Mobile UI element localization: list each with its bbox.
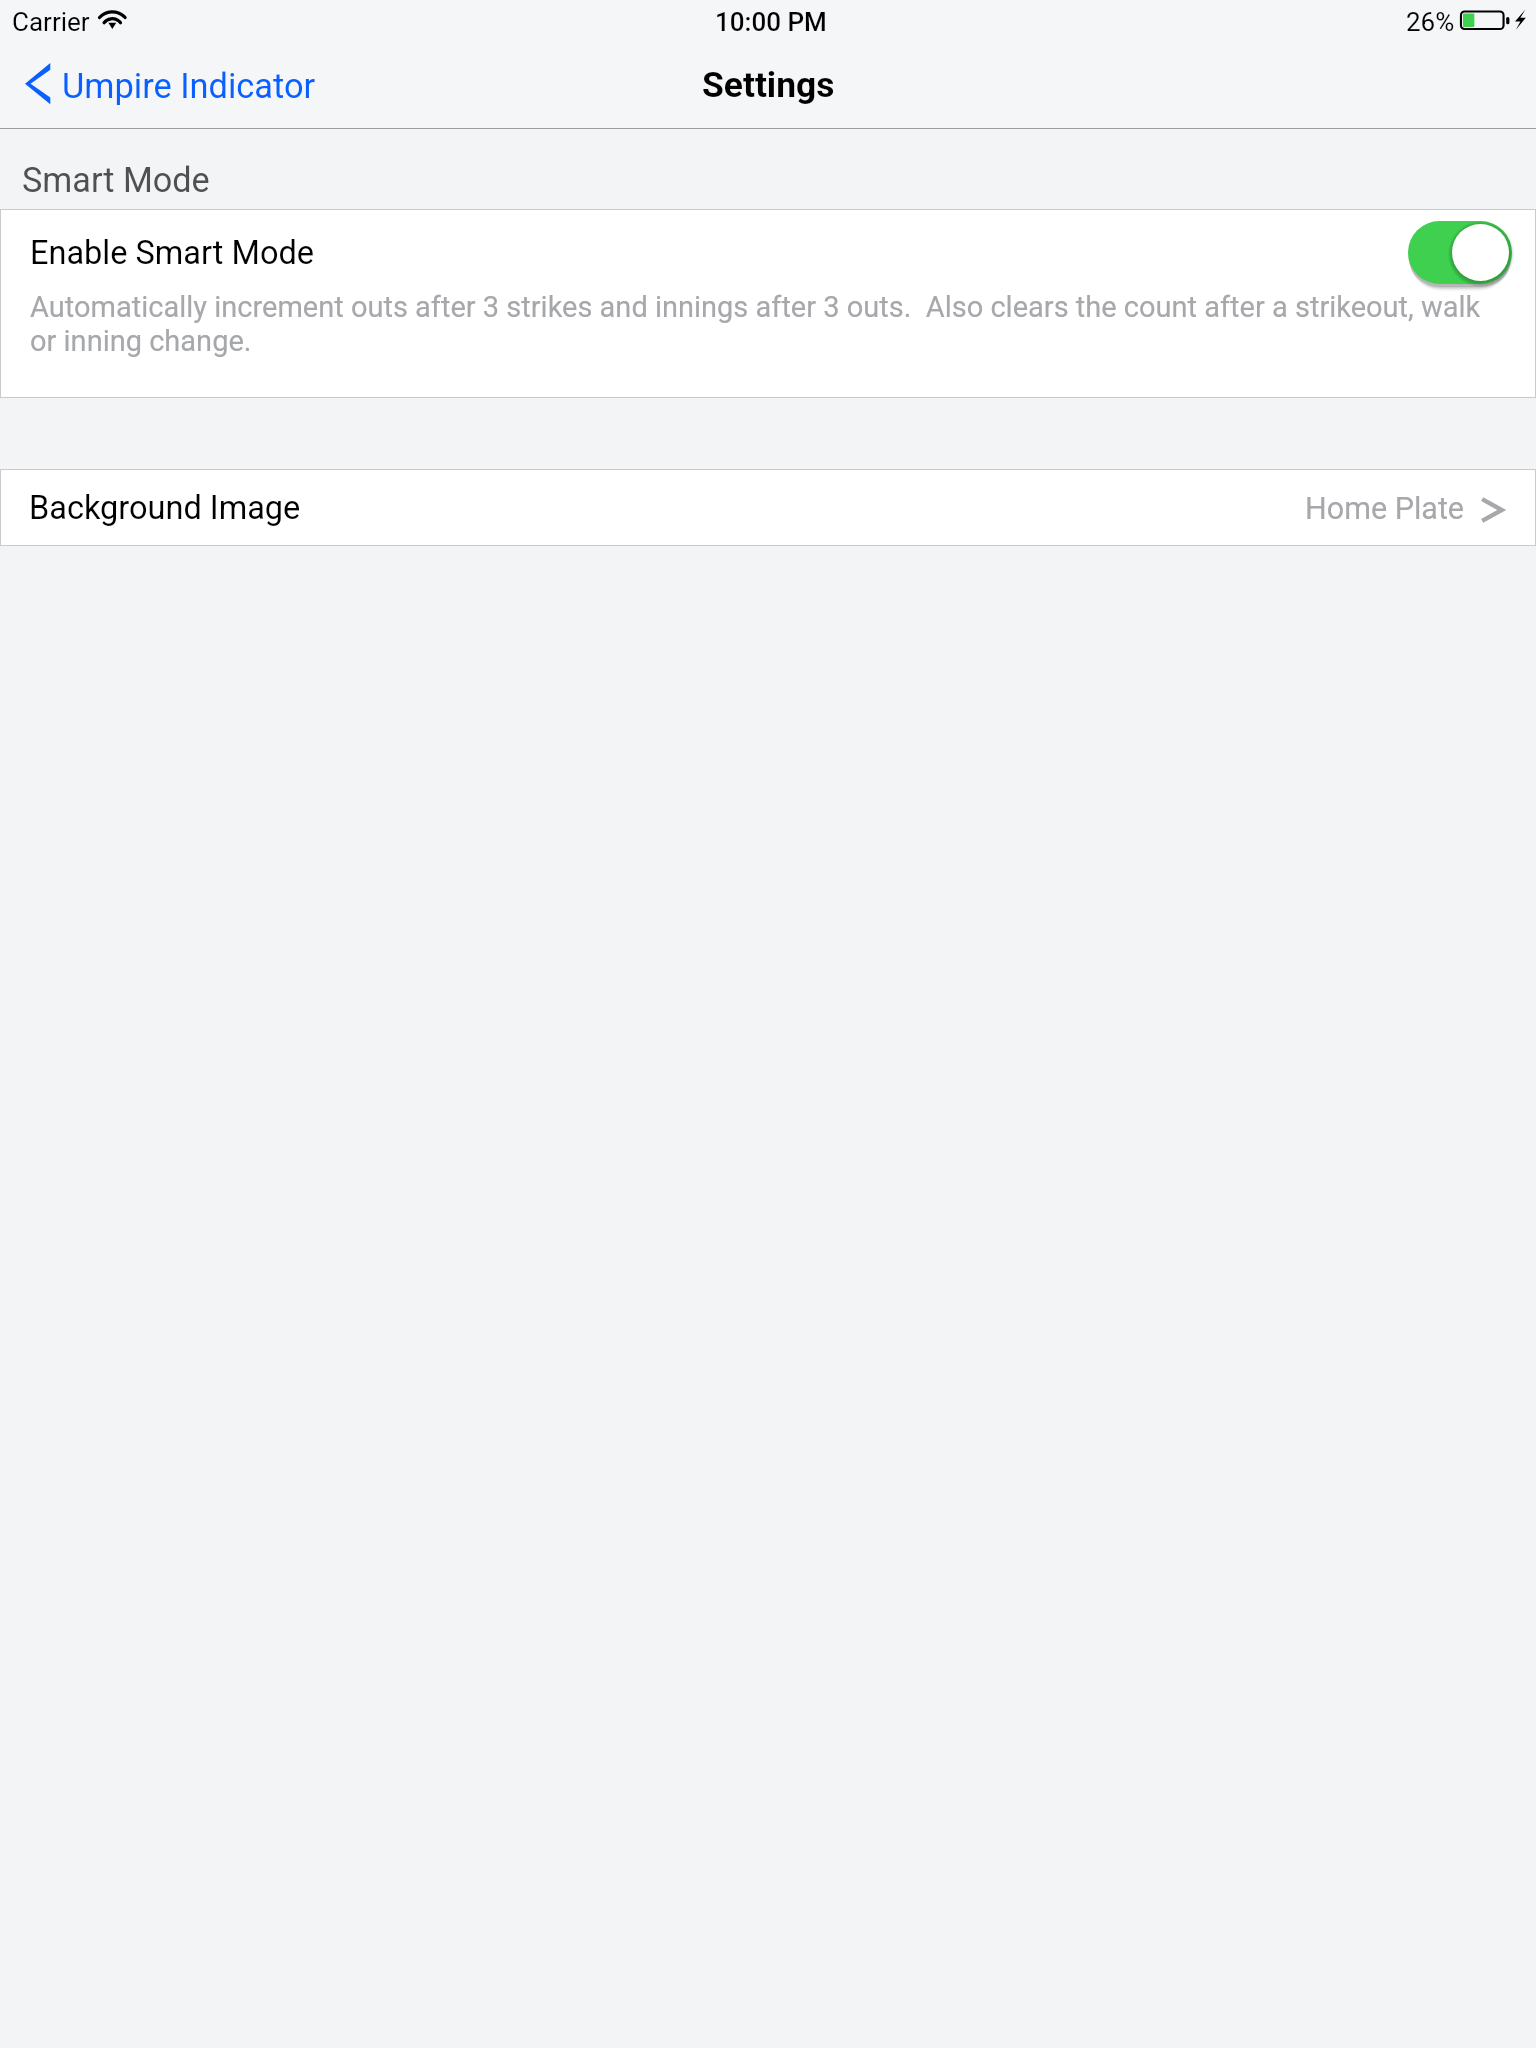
staticText: Background Image xyxy=(29,489,301,527)
button[interactable] xyxy=(1,210,1535,397)
staticText: 26% xyxy=(1406,7,1455,37)
button[interactable]: Back to Umpire Indicator xyxy=(10,48,330,118)
staticText: Umpire Indicator xyxy=(62,66,316,106)
staticText: Automatically increment outs after 3 str… xyxy=(30,290,1500,358)
button[interactable]: Background Image xyxy=(1,470,1535,545)
button[interactable]: Enable Smart Mode xyxy=(1406,221,1518,293)
staticText: Settings xyxy=(702,64,835,105)
staticText: Home Plate xyxy=(1305,491,1465,527)
staticText: Smart Mode xyxy=(22,160,210,200)
staticText: 10:00 PM xyxy=(715,7,827,37)
staticText: Carrier xyxy=(12,7,90,37)
staticText: Enable Smart Mode xyxy=(30,234,314,272)
